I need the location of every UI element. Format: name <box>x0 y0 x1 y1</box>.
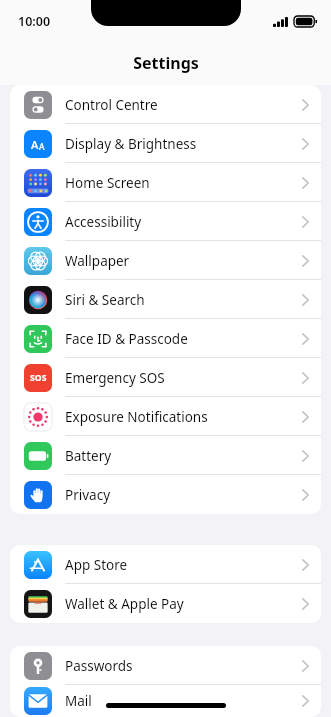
staticText: Passwords <box>65 657 133 675</box>
button[interactable]: Face ID & Passcode <box>10 319 321 358</box>
button[interactable]: A <box>10 124 321 163</box>
button[interactable]: Control Centre <box>10 85 321 124</box>
button[interactable]: Wallpaper <box>10 241 321 280</box>
staticText: Face ID & Passcode <box>65 330 188 348</box>
staticText: Wallpaper <box>65 252 130 270</box>
staticText: Siri & Search <box>65 291 145 309</box>
button[interactable]: Passwords <box>10 646 321 685</box>
button[interactable]: Accessibility <box>10 202 321 241</box>
button[interactable]: Mail <box>10 685 321 717</box>
staticText: Battery <box>65 447 112 465</box>
staticText: Wallet & Apple Pay <box>65 595 184 613</box>
button[interactable]: Wallet & Apple Pay <box>10 584 321 623</box>
button[interactable]: Battery <box>10 436 321 475</box>
staticText: A <box>39 141 45 152</box>
button[interactable]: Siri & Search <box>10 280 321 319</box>
staticText: 10:00 <box>18 13 51 30</box>
button[interactable]: SOS <box>10 358 321 397</box>
staticText: App Store <box>65 556 128 574</box>
staticText: Privacy <box>65 486 111 504</box>
staticText: A <box>31 137 39 152</box>
staticText: SOS <box>30 372 47 384</box>
staticText: Emergency SOS <box>65 369 165 387</box>
staticText: Exposure Notifications <box>65 408 208 426</box>
staticText: Accessibility <box>65 213 142 231</box>
button[interactable]: Privacy <box>10 475 321 514</box>
staticText: Display & Brightness <box>65 135 197 153</box>
staticText: Control Centre <box>65 96 158 114</box>
staticText: Home Screen <box>65 174 150 192</box>
button[interactable]: App Store <box>10 545 321 584</box>
staticText: Mail <box>65 692 92 710</box>
button[interactable]: Home Screen <box>10 163 321 202</box>
button[interactable]: Exposure Notifications <box>10 397 321 436</box>
staticText: Settings <box>133 52 199 74</box>
